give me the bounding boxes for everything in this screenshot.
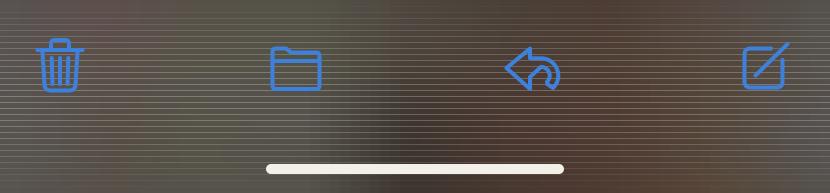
button[interactable]: Move to folder: [270, 48, 321, 89]
button[interactable]: Compose: [742, 42, 790, 88]
button[interactable]: Delete: [37, 40, 82, 92]
button[interactable]: Reply: [504, 46, 559, 92]
